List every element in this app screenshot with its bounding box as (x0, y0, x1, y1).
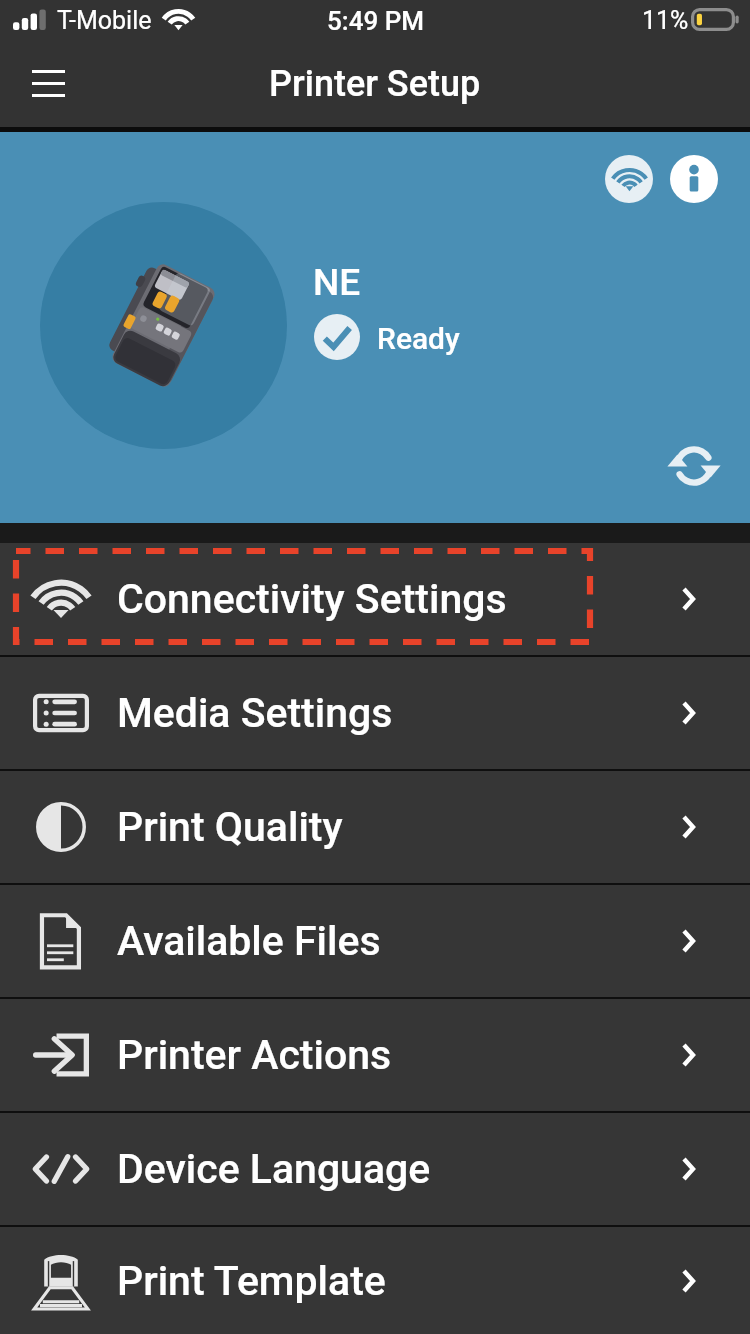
staticText: Print Quality (117, 803, 343, 851)
staticText: NE (313, 261, 361, 304)
staticText: 11% (642, 6, 689, 35)
button[interactable]: Wi-Fi status (605, 155, 653, 203)
staticText: Connectivity Settings (117, 575, 507, 623)
button[interactable]: Print Template (0, 1227, 750, 1334)
button[interactable]: Available Files (0, 885, 750, 997)
button[interactable]: Connectivity Settings (0, 543, 750, 655)
staticText: Media Settings (117, 689, 393, 737)
staticText: Device Language (117, 1145, 431, 1193)
button[interactable]: Printer information (670, 155, 718, 203)
staticText: Printer Setup (269, 63, 481, 105)
staticText: Printer Actions (117, 1031, 392, 1079)
staticText: Ready (377, 321, 460, 356)
staticText: Available Files (117, 917, 381, 965)
staticText: 5:49 PM (327, 6, 424, 36)
button[interactable]: Print Quality (0, 771, 750, 883)
staticText: T-Mobile (57, 6, 152, 35)
button[interactable]: Media Settings (0, 657, 750, 769)
button[interactable]: Refresh printer status (662, 434, 726, 498)
button[interactable]: Open navigation menu (0, 42, 96, 124)
staticText: Print Template (117, 1257, 386, 1305)
button[interactable]: Printer Actions (0, 999, 750, 1111)
button[interactable]: Device Language (0, 1113, 750, 1225)
